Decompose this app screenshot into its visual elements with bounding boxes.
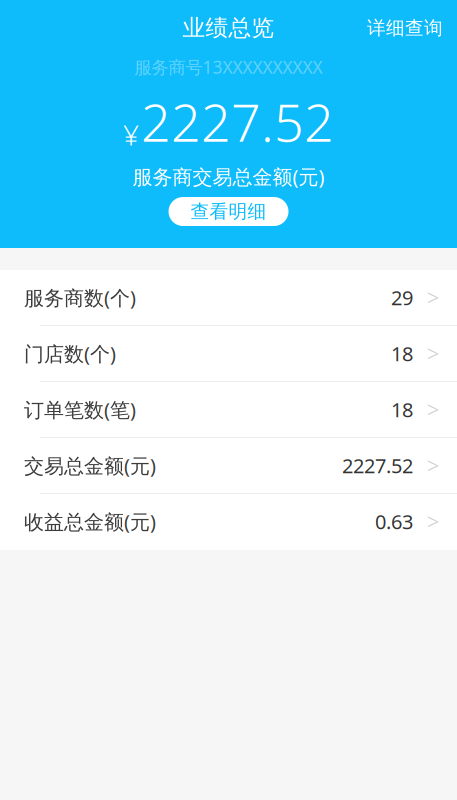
staticText: 服务商数(个) (24, 284, 136, 311)
staticText: > (427, 451, 439, 480)
staticText: 0.63 (375, 508, 413, 535)
staticText: > (427, 339, 439, 368)
staticText: 详细查询 (367, 16, 443, 39)
button[interactable]: 详细查询 (353, 8, 457, 47)
button[interactable]: 查看明细 (168, 197, 288, 226)
button[interactable]: 收益总金额(元) (0, 494, 457, 550)
staticText: > (427, 507, 439, 536)
staticText: 业绩总览 (182, 14, 274, 42)
button[interactable]: 订单笔数(笔) (0, 382, 457, 438)
button[interactable]: 服务商数(个) (0, 270, 457, 326)
staticText: 2227.52 (342, 452, 413, 479)
staticText: 18 (391, 340, 413, 367)
button[interactable]: 交易总金额(元) (0, 438, 457, 494)
staticText: 查看明细 (190, 200, 266, 223)
staticText: 29 (391, 284, 413, 311)
staticText: 18 (391, 396, 413, 423)
staticText: 2227.52 (141, 87, 334, 156)
staticText: > (427, 283, 439, 312)
staticText: 门店数(个) (24, 340, 116, 367)
staticText: ¥ (123, 116, 139, 153)
button[interactable]: 门店数(个) (0, 326, 457, 382)
staticText: 服务商号13XXXXXXXXXX (134, 55, 322, 78)
staticText: > (427, 395, 439, 424)
staticText: 交易总金额(元) (24, 452, 156, 479)
staticText: 服务商交易总金额(元) (132, 163, 324, 190)
staticText: 收益总金额(元) (24, 508, 156, 535)
staticText: 订单笔数(笔) (24, 396, 136, 423)
